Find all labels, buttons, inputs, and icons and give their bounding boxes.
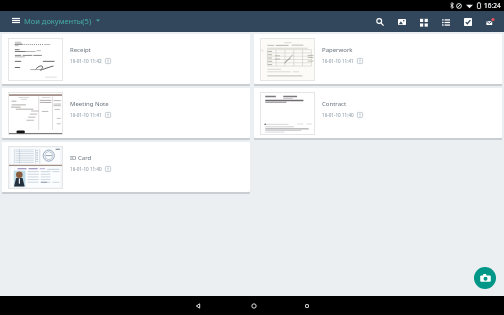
staticText: Contract — [322, 100, 347, 108]
staticText: 16:24 — [484, 1, 501, 10]
button[interactable]: Contract — [254, 88, 502, 138]
button[interactable]: Receipt — [2, 34, 250, 84]
button[interactable]: Menu — [0, 10, 100, 31]
button[interactable]: Search — [369, 11, 391, 32]
button[interactable]: Paperwork — [254, 34, 502, 84]
button[interactable]: Grid view — [413, 11, 435, 32]
button[interactable]: Recent apps — [292, 296, 321, 315]
staticText: 16-01-10 11:40 — [70, 166, 102, 172]
button[interactable]: List view — [435, 11, 457, 32]
staticText: Paperwork — [322, 46, 353, 54]
button[interactable]: ID Card — [2, 142, 250, 192]
staticText: 16-01-10 11:41 — [322, 58, 354, 64]
staticText: Receipt — [70, 46, 91, 54]
other: Menu — [4, 10, 28, 31]
staticText: Мои документы(5) — [24, 16, 92, 26]
button[interactable]: Meeting Note — [2, 88, 250, 138]
button[interactable]: Back — [183, 296, 212, 315]
button[interactable]: Gallery — [391, 11, 413, 32]
button[interactable]: Messages — [479, 11, 501, 32]
button[interactable]: Take photo — [474, 267, 496, 289]
staticText: Meeting Note — [70, 100, 109, 108]
staticText: ID Card — [70, 154, 92, 162]
staticText: 16-01-10 11:41 — [70, 112, 102, 118]
button[interactable]: Select all — [457, 11, 479, 32]
staticText: 16-01-10 11:42 — [70, 58, 102, 64]
button[interactable]: Home — [239, 296, 268, 315]
staticText: 16-01-10 11:40 — [322, 112, 354, 118]
